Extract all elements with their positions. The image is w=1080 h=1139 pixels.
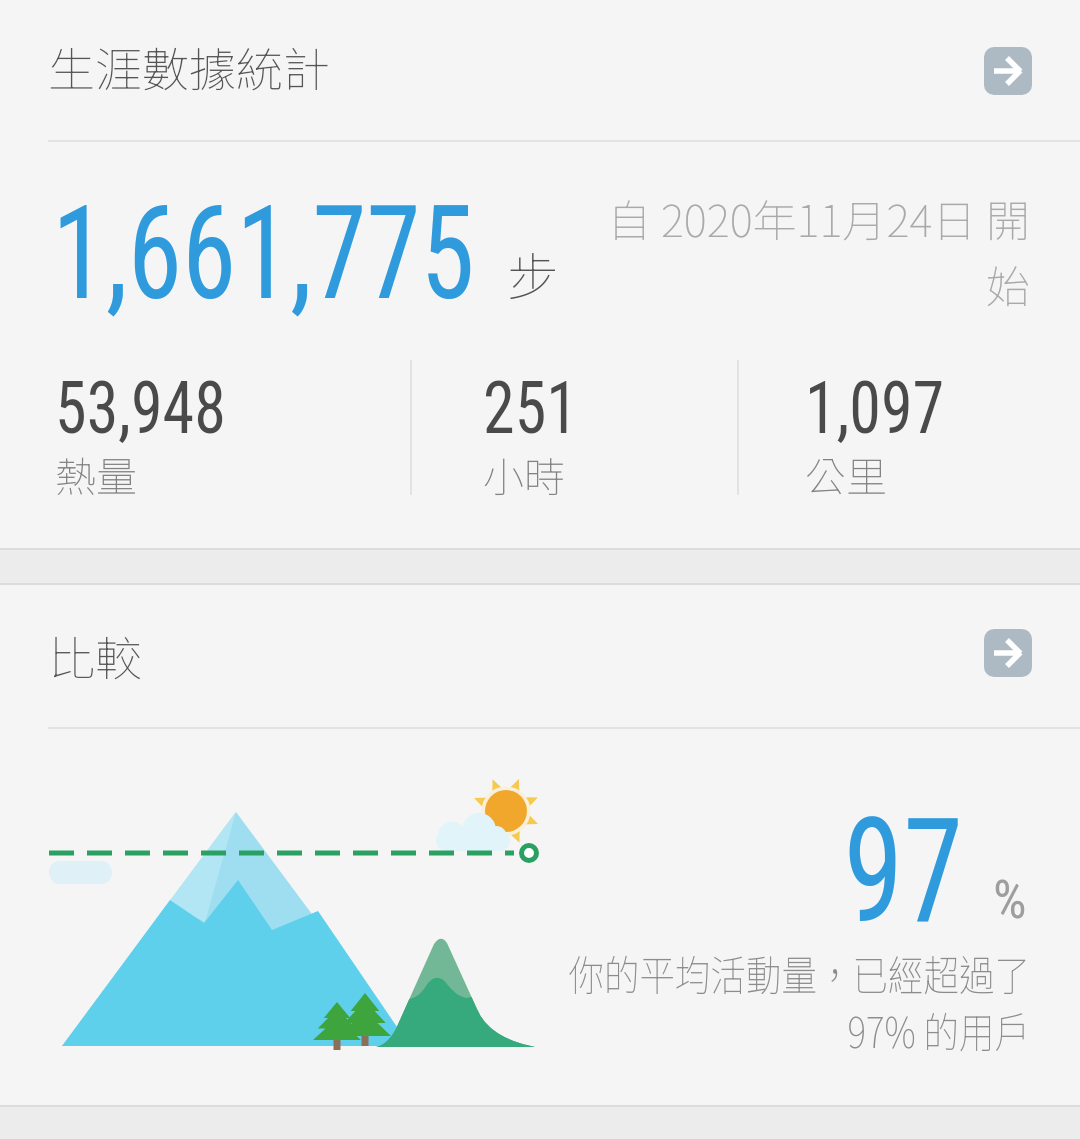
staticText: 自 2020年11月24日 開 始 xyxy=(530,186,1030,316)
staticText: 步 xyxy=(507,236,560,311)
staticText: 熱量 xyxy=(55,444,137,503)
staticText: % xyxy=(993,869,1027,931)
staticText: 小時 xyxy=(483,444,565,503)
staticText: 公里 xyxy=(805,444,887,503)
button[interactable] xyxy=(984,47,1032,95)
button[interactable]: 比較 xyxy=(0,585,1080,1105)
staticText: 你的平均活動量，已經超過了 97% 的用戶 xyxy=(523,942,1030,1061)
staticText: 生涯數據統計 xyxy=(48,32,330,100)
staticText: 1,097 xyxy=(805,366,945,450)
staticText: 251 xyxy=(483,366,578,450)
button[interactable]: 生涯數據統計 xyxy=(0,0,1080,548)
button[interactable] xyxy=(984,629,1032,677)
staticText: 53,948 xyxy=(55,366,226,450)
staticText: 比較 xyxy=(48,621,142,689)
staticText: 1,661,775 xyxy=(52,177,475,329)
staticText: 97 xyxy=(459,787,963,956)
